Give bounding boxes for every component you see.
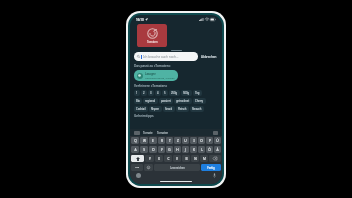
button[interactable]: getrocknet [174, 98, 192, 104]
button[interactable]: Ü [214, 137, 221, 144]
staticText: passiert [161, 99, 171, 103]
button[interactable]: W [140, 137, 148, 144]
staticText: 1kg [195, 91, 200, 95]
staticText: Q [134, 139, 137, 143]
button[interactable]: I [190, 137, 197, 144]
button[interactable]: Abbrechen [200, 54, 218, 60]
staticText: Lasagne [145, 72, 156, 76]
button[interactable]: P [206, 137, 213, 144]
button[interactable]: K [190, 146, 197, 153]
staticText: C [167, 157, 170, 161]
button[interactable]: regional [143, 98, 158, 104]
button[interactable]: V [173, 155, 181, 162]
button[interactable]: Ö [206, 146, 213, 153]
staticText: Tomaten [157, 131, 169, 135]
button[interactable]: Fleisch [176, 106, 189, 112]
button[interactable]: 4 [155, 90, 161, 96]
button[interactable]: Snack [163, 106, 175, 112]
button[interactable]: 1kg [193, 90, 202, 96]
staticText: U [184, 139, 187, 143]
staticText: Y [149, 157, 151, 161]
button[interactable]: Dictate [213, 173, 216, 178]
staticText: Ä [216, 148, 219, 152]
button[interactable]: H [174, 146, 181, 153]
staticText: E [152, 139, 154, 143]
button[interactable]: Cocktail [134, 106, 148, 112]
staticText: M [203, 157, 206, 161]
staticText: 4 [157, 91, 159, 95]
button[interactable]: Shift [131, 155, 144, 162]
button[interactable]: 5 [162, 90, 168, 96]
staticText: Abbrechen [201, 55, 217, 59]
staticText: Ich brauche auch noch… [143, 55, 179, 59]
staticText: R [161, 139, 163, 143]
button[interactable]: Q [131, 137, 139, 144]
staticText: D [152, 148, 155, 152]
staticText: 2 [143, 91, 145, 95]
staticText: Leerzeichen [170, 166, 185, 170]
button[interactable]: Backspace [209, 155, 221, 162]
button[interactable]: Tomaten [137, 24, 167, 47]
button[interactable]: E [149, 137, 157, 144]
staticText: Ö [208, 148, 211, 152]
button[interactable]: F [158, 146, 165, 153]
button[interactable]: B [182, 155, 190, 162]
button[interactable]: A [131, 146, 139, 153]
button[interactable]: Fertig [201, 164, 221, 171]
button[interactable]: N [191, 155, 199, 162]
staticText: A [134, 148, 137, 152]
button[interactable]: Ä [214, 146, 221, 153]
staticText: K [193, 148, 195, 152]
button[interactable]: C [164, 155, 172, 162]
staticText: Strauch [192, 107, 202, 111]
button[interactable]: 3 [148, 90, 154, 96]
button[interactable]: O [198, 137, 205, 144]
staticText: Bio [136, 99, 140, 103]
button[interactable]: Y [145, 155, 154, 162]
button[interactable]: Rispen [149, 106, 162, 112]
staticText: 1 [136, 91, 138, 95]
button[interactable]: Ich brauche auch noch… [134, 52, 198, 61]
button[interactable]: Lasagne [134, 70, 178, 81]
button[interactable]: S [140, 146, 148, 153]
button[interactable]: Keyboard layout [136, 173, 141, 178]
button[interactable]: 250g [169, 90, 180, 96]
staticText: regional [145, 99, 156, 103]
button[interactable]: Strauch [190, 106, 204, 112]
button[interactable]: passiert [159, 98, 173, 104]
staticText: Fertig [207, 166, 215, 170]
button[interactable]: 2 [141, 90, 147, 96]
button[interactable]: L [198, 146, 205, 153]
staticText: J [185, 148, 186, 152]
button[interactable]: 1 [134, 90, 140, 96]
staticText: 500g [183, 91, 190, 95]
staticText: Tomate [143, 131, 153, 135]
button[interactable]: M [200, 155, 208, 162]
staticText: Snack [165, 107, 173, 111]
button[interactable]: 123 [131, 164, 143, 171]
staticText: X [158, 157, 160, 161]
button[interactable]: Emoji [144, 164, 153, 171]
staticText: S [143, 148, 145, 152]
staticText: W [143, 139, 146, 143]
staticText: P [209, 139, 211, 143]
staticText: V [176, 157, 178, 161]
button[interactable]: U [182, 137, 189, 144]
button[interactable]: X [155, 155, 163, 162]
button[interactable]: Cherry [193, 98, 206, 104]
staticText: 5 [164, 91, 166, 95]
staticText: T [169, 139, 171, 143]
button[interactable]: R [158, 137, 165, 144]
button[interactable]: 500g [181, 90, 192, 96]
button[interactable]: Z [174, 137, 181, 144]
staticText: 16:10 [136, 18, 144, 22]
button[interactable]: D [149, 146, 157, 153]
staticText: F [161, 148, 163, 152]
button[interactable]: J [182, 146, 189, 153]
button[interactable]: Bio [134, 98, 142, 104]
button[interactable]: T [166, 137, 173, 144]
staticText: Ü [216, 139, 219, 143]
button[interactable]: G [166, 146, 173, 153]
staticText: Cocktail [136, 107, 146, 111]
button[interactable]: Leerzeichen [154, 164, 200, 171]
